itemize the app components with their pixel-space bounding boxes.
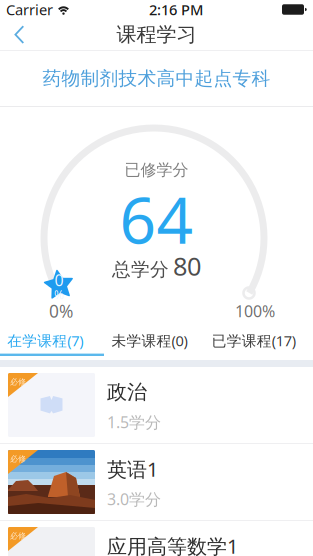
staticText: 应用高等数学1 — [107, 533, 238, 556]
staticText: Carrier — [6, 0, 53, 19]
staticText: % — [54, 287, 64, 303]
staticText: 64 — [119, 176, 193, 261]
staticText: 政治 — [107, 380, 147, 404]
staticText: 未学课程(0) — [111, 331, 187, 350]
staticText: 在学课程(7) — [7, 331, 83, 350]
button[interactable]: 已学课程(17) — [202, 323, 306, 358]
button[interactable]: 未学课程(0) — [97, 323, 202, 358]
button[interactable]: 必修 — [0, 367, 313, 443]
staticText: 总学分 — [112, 258, 169, 281]
button[interactable]: Back — [0, 19, 39, 50]
staticText: 必修 — [10, 377, 26, 387]
staticText: 100% — [235, 300, 275, 322]
staticText: 已修学分 — [124, 160, 188, 180]
staticText: 3.0学分 — [107, 488, 161, 510]
button[interactable]: 必修 — [0, 444, 313, 520]
button[interactable]: 必修 — [0, 521, 313, 556]
staticText: 2:16 PM — [149, 0, 203, 19]
staticText: 药物制剂技术高中起点专科 — [42, 67, 270, 90]
staticText: 0% — [49, 299, 73, 322]
staticText: 1.5学分 — [107, 411, 161, 433]
staticText: 英语1 — [107, 456, 158, 482]
button[interactable]: 在学课程(7) — [0, 323, 97, 358]
staticText: 必修 — [10, 531, 26, 541]
staticText: 0 — [54, 269, 63, 291]
staticText: 必修 — [10, 454, 26, 464]
staticText: 80 — [173, 249, 201, 283]
staticText: 课程学习 — [116, 22, 196, 47]
staticText: 已学课程(17) — [212, 331, 296, 350]
